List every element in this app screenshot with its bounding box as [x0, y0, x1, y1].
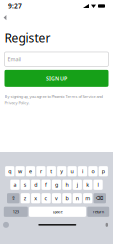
- button[interactable]: u: [67, 166, 77, 176]
- button[interactable]: Shift: [7, 193, 19, 203]
- staticText: h: [65, 181, 68, 188]
- button[interactable]: g: [52, 180, 61, 190]
- staticText: w: [18, 168, 22, 175]
- staticText: r: [40, 168, 42, 175]
- button[interactable]: Dictate: [106, 223, 113, 227]
- button[interactable]: Delete: [93, 193, 106, 203]
- button[interactable]: m: [83, 193, 92, 203]
- staticText: e: [29, 168, 32, 175]
- button[interactable]: 123: [4, 207, 28, 217]
- button[interactable]: Back: [0, 12, 12, 24]
- button[interactable]: j: [73, 180, 82, 190]
- staticText: g: [55, 181, 58, 188]
- staticText: ⇧: [11, 195, 15, 201]
- button[interactable]: y: [57, 166, 66, 176]
- staticText: d: [34, 181, 37, 188]
- staticText: Register: [4, 30, 50, 46]
- staticText: j: [77, 181, 78, 188]
- button[interactable]: f: [41, 180, 51, 190]
- button[interactable]: space: [29, 207, 86, 217]
- staticText: k: [86, 181, 89, 188]
- staticText: x: [34, 195, 37, 202]
- button[interactable]: z: [21, 193, 30, 203]
- staticText: SIGN UP: [46, 75, 67, 82]
- staticText: o: [91, 168, 94, 175]
- button[interactable]: o: [88, 166, 97, 176]
- button[interactable]: s: [21, 180, 30, 190]
- button[interactable]: k: [83, 180, 92, 190]
- button[interactable]: i: [78, 166, 87, 176]
- staticText: space: [52, 209, 62, 214]
- staticText: Email: [7, 56, 20, 63]
- button[interactable]: SIGN UP: [0, 66, 113, 87]
- staticText: s: [24, 181, 27, 188]
- staticText: c: [45, 195, 48, 202]
- staticText: l: [98, 181, 99, 188]
- button[interactable]: d: [31, 180, 40, 190]
- button[interactable]: q: [5, 166, 14, 176]
- staticText: p: [102, 168, 105, 175]
- staticText: Privacy Policy.: [4, 100, 29, 105]
- staticText: 123: [13, 209, 19, 214]
- staticText: 9:27: [8, 2, 22, 10]
- staticText: t: [50, 168, 52, 175]
- staticText: q: [8, 168, 11, 175]
- button[interactable]: b: [62, 193, 71, 203]
- button[interactable]: n: [73, 193, 82, 203]
- staticText: u: [71, 168, 74, 175]
- button[interactable]: return: [87, 207, 109, 217]
- button[interactable]: Emoji: [0, 222, 9, 228]
- staticText: m: [85, 195, 90, 202]
- button[interactable]: h: [62, 180, 71, 190]
- button[interactable]: a: [10, 180, 19, 190]
- button[interactable]: v: [52, 193, 61, 203]
- staticText: f: [45, 181, 47, 188]
- staticText: By signing up, you agree to Phoenix Term…: [4, 94, 102, 99]
- staticText: z: [24, 195, 27, 202]
- staticText: v: [55, 195, 58, 202]
- button[interactable]: x: [31, 193, 40, 203]
- staticText: b: [65, 195, 68, 202]
- button[interactable]: c: [41, 193, 51, 203]
- staticText: a: [13, 181, 16, 188]
- button[interactable]: e: [26, 166, 35, 176]
- button[interactable]: p: [99, 166, 108, 176]
- button[interactable]: w: [15, 166, 25, 176]
- staticText: i: [82, 168, 83, 175]
- staticText: n: [76, 195, 79, 202]
- button[interactable]: t: [47, 166, 56, 176]
- staticText: y: [60, 168, 63, 175]
- staticText: return: [93, 209, 104, 214]
- button[interactable]: l: [93, 180, 103, 190]
- staticText: ⌫: [96, 195, 104, 201]
- button[interactable]: r: [36, 166, 45, 176]
